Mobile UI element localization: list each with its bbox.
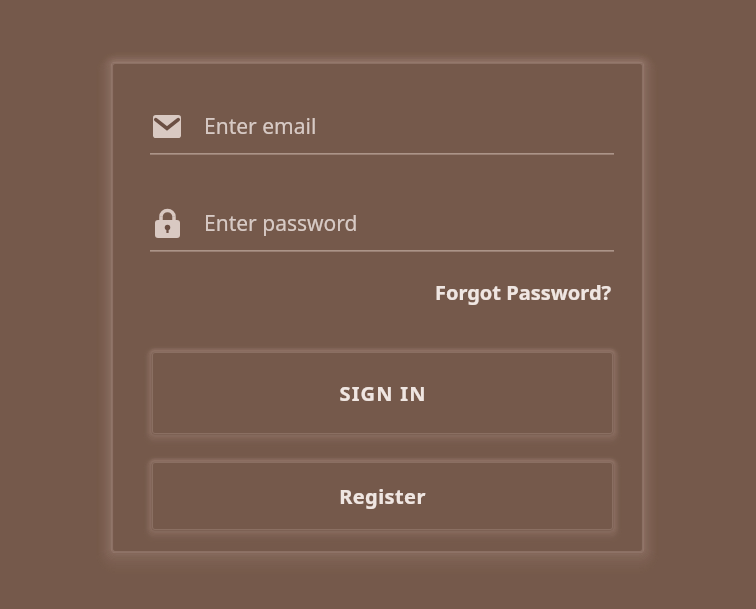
staticText: Enter password	[204, 209, 358, 238]
staticText: Enter email	[204, 112, 317, 141]
other: Password	[150, 208, 184, 238]
staticText: Forgot Password?	[435, 279, 612, 306]
button[interactable]: Forgot Password?	[433, 275, 614, 310]
button[interactable]: Password	[150, 208, 614, 252]
staticText: Register	[339, 483, 426, 510]
button[interactable]: Register	[152, 462, 613, 530]
button[interactable]: Email	[150, 112, 614, 155]
button[interactable]: SIGN IN	[152, 352, 613, 434]
staticText: SIGN IN	[339, 380, 427, 407]
other: Email	[150, 115, 184, 138]
